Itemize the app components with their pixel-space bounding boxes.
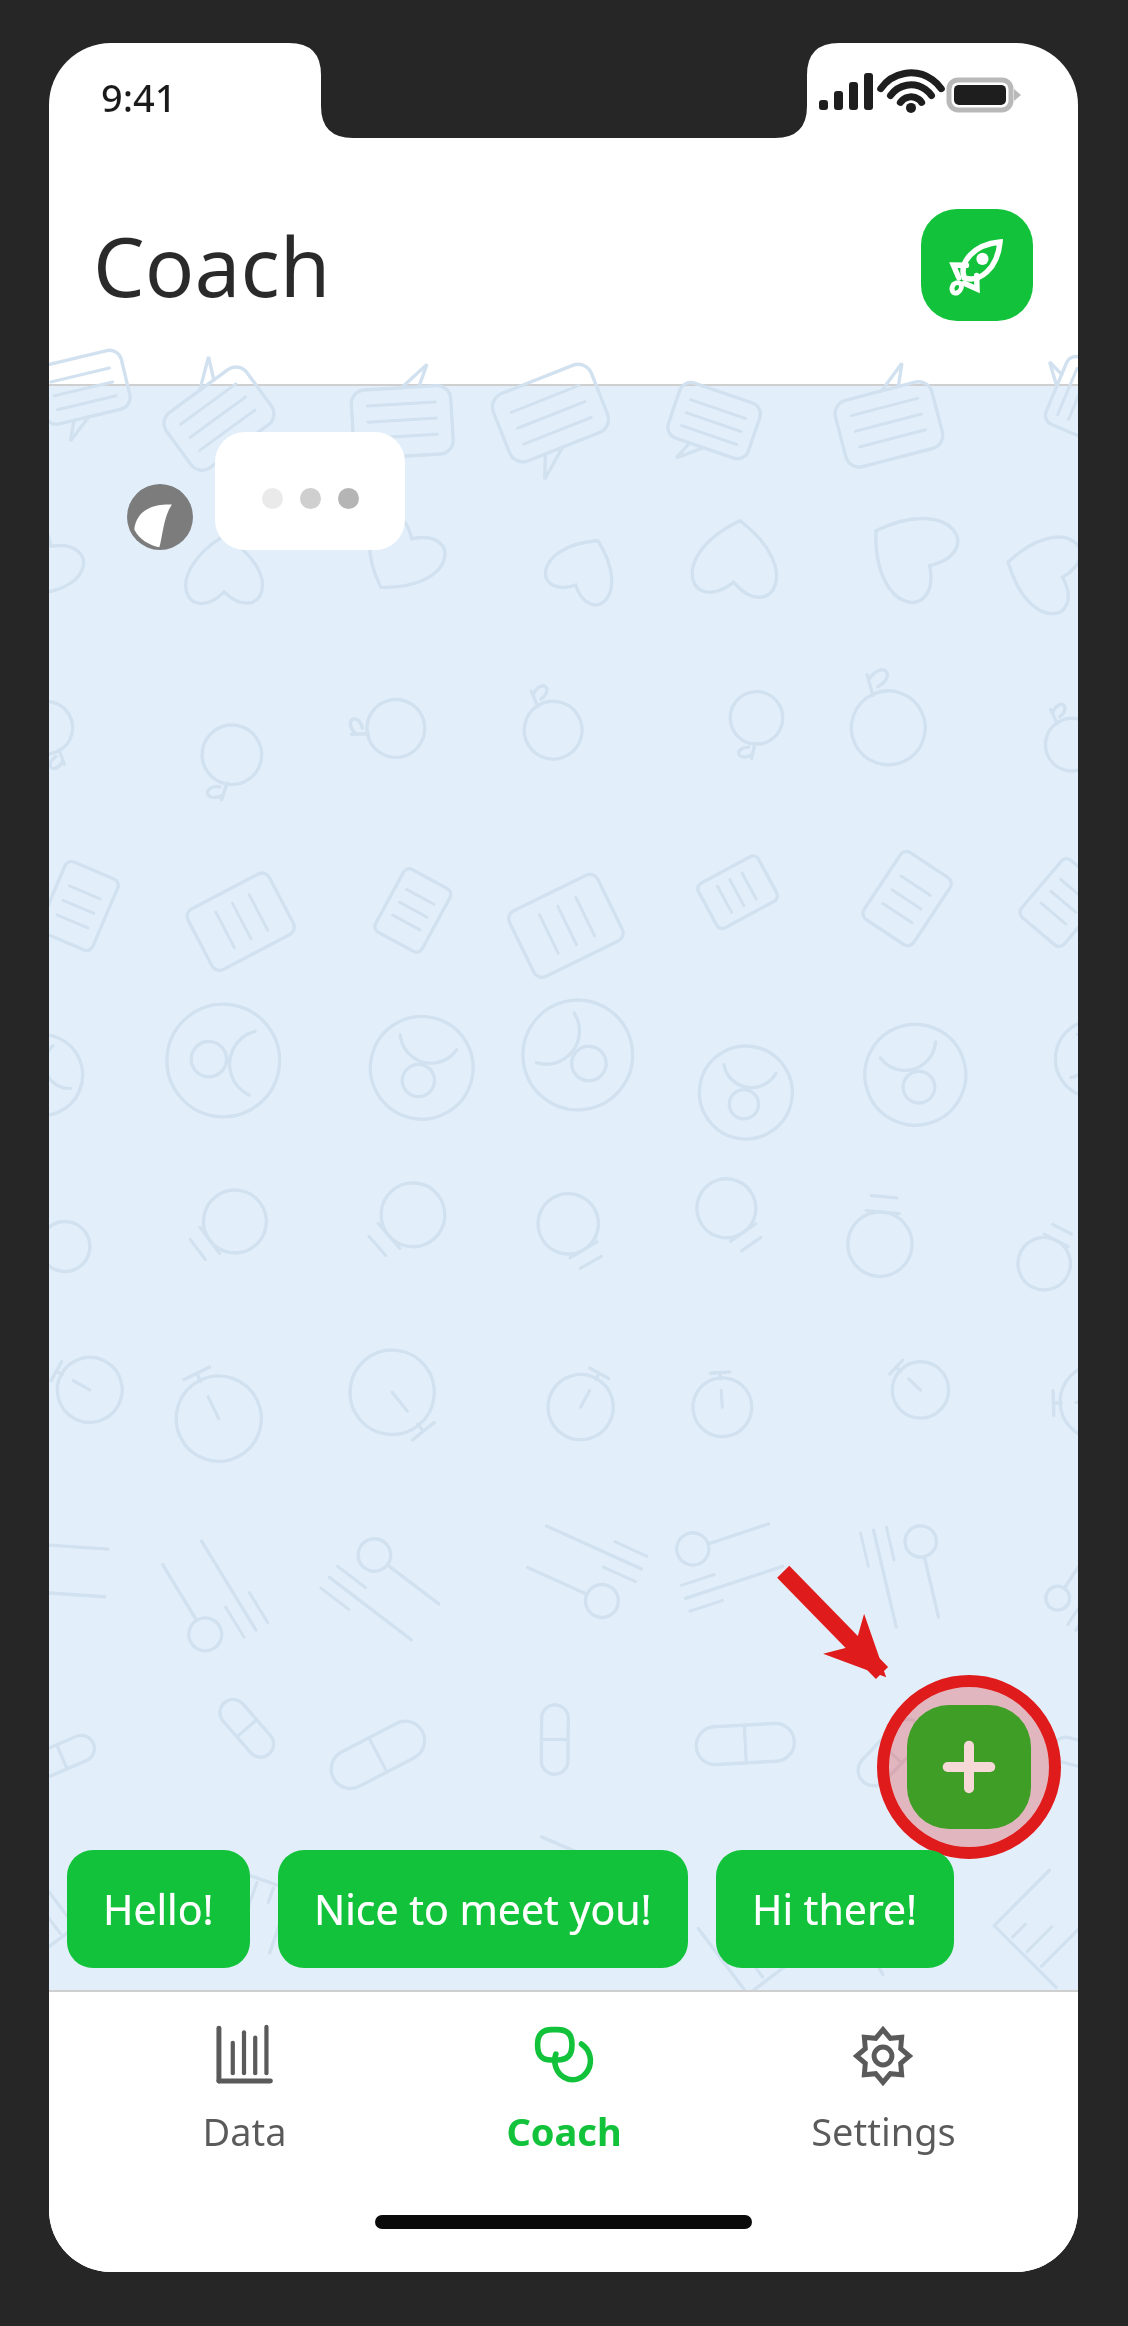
button[interactable]: Hi there! [716,1850,954,1968]
button[interactable]: Launch [921,209,1033,321]
staticText: Settings [811,2105,956,2157]
staticText: Hello! [103,1881,214,1937]
staticText: Nice to meet you! [314,1881,652,1937]
button[interactable]: Add [907,1705,1031,1829]
staticText: 9:41 [101,71,177,123]
staticText: Data [202,2105,287,2157]
button[interactable]: Nice to meet you! [278,1850,688,1968]
button[interactable] [215,432,405,550]
staticText: Coach [93,209,331,321]
button[interactable]: Settings [758,2013,1008,2167]
button[interactable]: Hello! [67,1850,250,1968]
staticText: Hi there! [752,1881,918,1937]
staticText: Coach [506,2105,622,2157]
button[interactable]: Coach [439,2013,689,2167]
button[interactable]: Data [119,2013,369,2167]
